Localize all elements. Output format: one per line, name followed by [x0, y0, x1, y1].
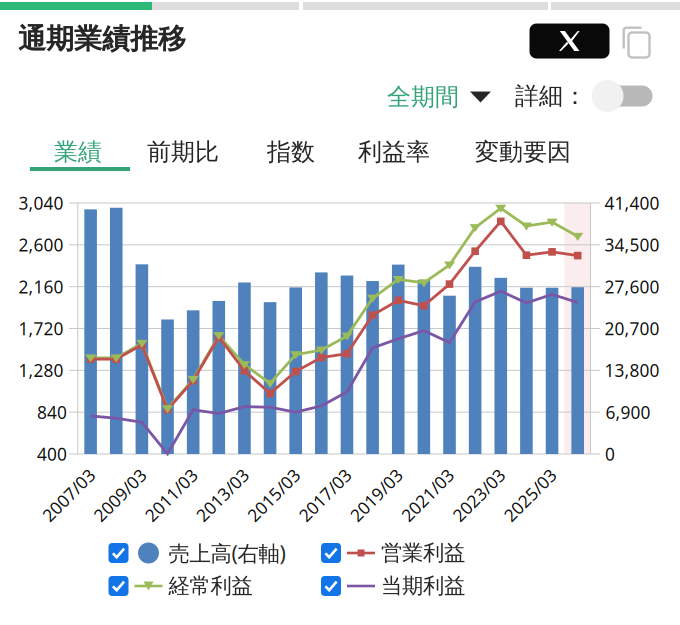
staticText: 営業利益: [381, 540, 465, 566]
staticText: 全期間: [387, 82, 459, 112]
staticText: 2007/03: [36, 483, 102, 506]
button[interactable]: 経常利益: [108, 573, 298, 599]
button[interactable]: 前期比: [135, 130, 231, 174]
staticText: 3,040: [18, 191, 63, 214]
button[interactable]: 利益率: [346, 130, 442, 174]
staticText: 売上高(右軸): [168, 539, 285, 567]
button[interactable]: 指数: [255, 130, 327, 174]
staticText: 840: [37, 401, 67, 424]
staticText: 13,800: [604, 359, 659, 382]
staticText: 1,720: [18, 317, 63, 340]
button[interactable]: Xで共有: [529, 23, 609, 58]
staticText: 27,600: [604, 275, 659, 298]
staticText: 詳細：: [515, 81, 587, 111]
button[interactable]: コピー: [622, 26, 649, 57]
staticText: 指数: [267, 137, 315, 167]
staticText: 2,160: [18, 275, 63, 298]
staticText: 2015/03: [241, 483, 307, 506]
staticText: 6,900: [605, 401, 650, 424]
staticText: 400: [37, 442, 67, 465]
staticText: 2021/03: [394, 483, 460, 506]
button[interactable]: 変動要因: [463, 130, 583, 174]
staticText: 前期比: [147, 137, 219, 167]
staticText: 2011/03: [138, 483, 204, 506]
staticText: 1,280: [18, 359, 63, 382]
staticText: 41,400: [604, 191, 659, 214]
staticText: 通期業績推移: [18, 22, 186, 56]
staticText: 変動要因: [475, 137, 571, 167]
staticText: 利益率: [358, 137, 430, 167]
staticText: 経常利益: [168, 573, 252, 599]
staticText: 2,600: [18, 233, 63, 256]
staticText: 当期利益: [381, 573, 465, 599]
button[interactable]: 売上高(右軸): [108, 539, 298, 567]
button[interactable]: 当期利益: [321, 573, 511, 599]
staticText: 34,500: [604, 233, 659, 256]
staticText: 業績: [54, 137, 102, 167]
button[interactable]: 業績: [42, 130, 114, 174]
staticText: 20,700: [604, 317, 659, 340]
staticText: 2025/03: [497, 483, 563, 506]
button[interactable]: 営業利益: [321, 540, 511, 566]
button[interactable]: 詳細表示: [589, 80, 651, 112]
staticText: 2019/03: [343, 483, 409, 506]
button[interactable]: 全期間: [387, 82, 491, 112]
staticText: 2013/03: [189, 483, 255, 506]
staticText: 2017/03: [292, 483, 358, 506]
staticText: 2009/03: [87, 483, 153, 506]
staticText: 2023/03: [446, 483, 512, 506]
staticText: 0: [605, 442, 615, 465]
